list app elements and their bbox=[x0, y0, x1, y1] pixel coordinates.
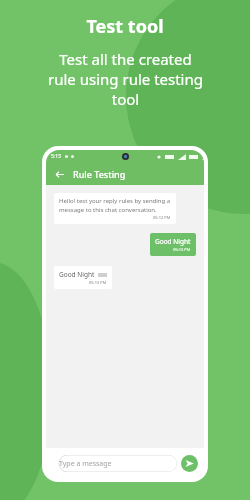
staticText: Hello! test your reply rules by sending … bbox=[59, 197, 171, 213]
staticText: Rule Testing bbox=[73, 168, 126, 180]
staticText: Test all the created rule using rule tes… bbox=[48, 49, 203, 109]
staticText: Test tool bbox=[86, 14, 164, 39]
button[interactable]: Type a message bbox=[52, 455, 177, 472]
staticText: Type a message bbox=[59, 459, 112, 469]
staticText: 05:13 PM bbox=[89, 280, 107, 285]
staticText: 5:13 bbox=[51, 153, 61, 160]
staticText: 05:12 PM bbox=[153, 215, 171, 220]
button[interactable]: Good Night bbox=[54, 266, 112, 289]
staticText: 05:13 PM bbox=[173, 247, 191, 252]
button[interactable]: Send bbox=[181, 455, 198, 472]
staticText: Good Night bbox=[155, 237, 191, 246]
button[interactable]: Hello! test your reply rules by sending … bbox=[54, 193, 176, 224]
button[interactable]: Back bbox=[52, 167, 66, 181]
button[interactable]: Good Night bbox=[150, 233, 196, 256]
staticText: Good Night bbox=[59, 270, 95, 279]
